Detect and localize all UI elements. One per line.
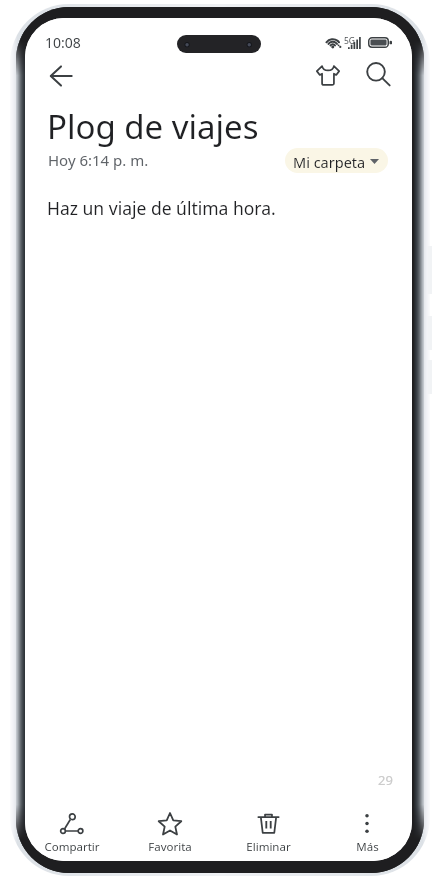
staticText: Haz un viaje de última hora. xyxy=(47,196,276,220)
staticText: 5G xyxy=(344,35,356,47)
staticText: Compartir xyxy=(44,839,100,855)
staticText: Eliminar xyxy=(246,839,291,855)
button[interactable]: Compartir xyxy=(25,811,119,861)
button[interactable]: Mi carpeta xyxy=(285,148,388,173)
staticText: 29 xyxy=(378,771,393,789)
button[interactable]: Search xyxy=(355,51,401,97)
button[interactable]: Favorita xyxy=(123,811,217,861)
button[interactable]: Eliminar xyxy=(221,811,315,861)
button[interactable]: Back xyxy=(38,53,84,99)
staticText: Favorita xyxy=(148,839,192,855)
staticText: Hoy 6:14 p. m. xyxy=(48,150,149,170)
staticText: 10:08 xyxy=(45,33,81,52)
button[interactable]: Más xyxy=(320,811,412,861)
button[interactable]: Appearance xyxy=(305,52,351,98)
staticText: Plog de viajes xyxy=(47,104,259,149)
staticText: Mi carpeta xyxy=(293,152,366,172)
staticText: Más xyxy=(356,839,379,855)
